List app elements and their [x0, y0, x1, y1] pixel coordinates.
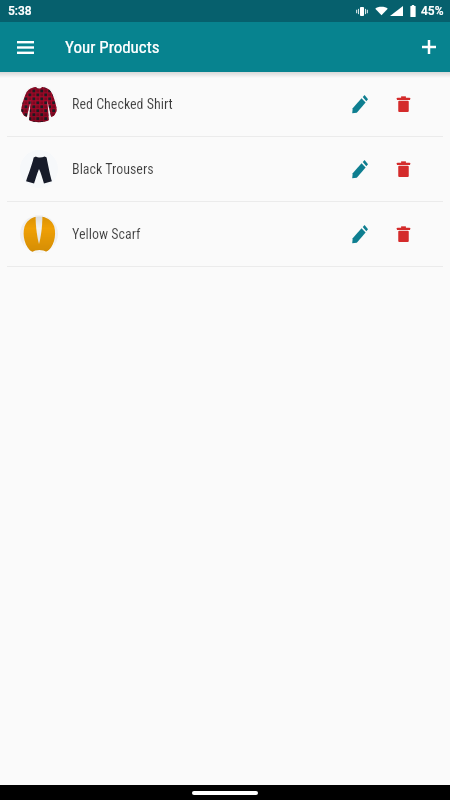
staticText: 45% [421, 4, 444, 18]
button[interactable]: Red Checked Shirt [0, 72, 450, 136]
button[interactable]: Open navigation menu [5, 27, 45, 67]
button[interactable]: Edit Black Trousers [339, 149, 379, 189]
button[interactable]: Edit Red Checked Shirt [339, 84, 379, 124]
staticText: Your Products [65, 37, 160, 57]
staticText: Red Checked Shirt [72, 96, 173, 112]
button[interactable]: Delete Black Trousers [383, 149, 423, 189]
button[interactable]: Delete Red Checked Shirt [383, 84, 423, 124]
staticText: Yellow Scarf [72, 226, 141, 242]
button[interactable]: Edit Yellow Scarf [339, 214, 379, 254]
button[interactable]: Delete Yellow Scarf [383, 214, 423, 254]
staticText: 5:38 [8, 4, 32, 18]
button[interactable]: Yellow Scarf [0, 202, 450, 266]
staticText: Black Trousers [72, 161, 154, 177]
button[interactable]: Black Trousers [0, 137, 450, 201]
button[interactable]: Add product [409, 27, 449, 67]
